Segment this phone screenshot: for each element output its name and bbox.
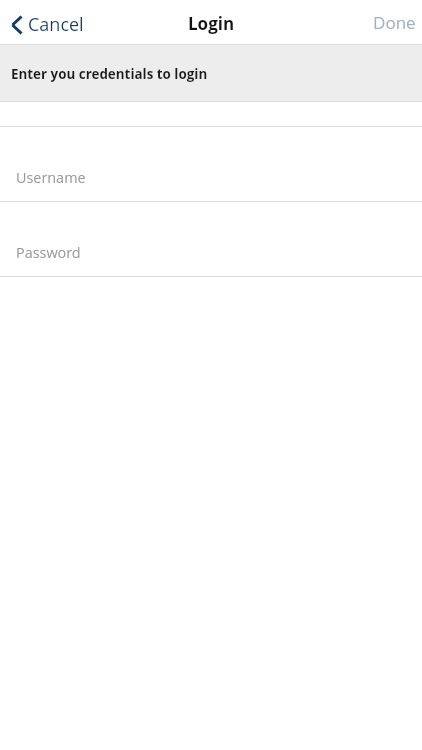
button[interactable]: Username <box>0 127 422 201</box>
staticText: Password <box>16 243 81 263</box>
staticText: Done <box>373 11 416 34</box>
staticText: Username <box>16 168 86 188</box>
button[interactable]: Done <box>361 0 422 44</box>
button[interactable]: Back <box>0 0 96 44</box>
staticText: Login <box>188 12 235 35</box>
other: Back <box>11 15 23 35</box>
staticText: Cancel <box>28 12 84 37</box>
button[interactable]: Password <box>0 202 422 276</box>
staticText: Enter you credentials to login <box>11 65 208 83</box>
